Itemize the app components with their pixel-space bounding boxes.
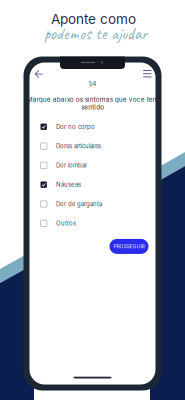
button[interactable]: Dor lombar [40, 156, 144, 175]
button[interactable]: PROSSEGUIR [109, 239, 148, 254]
staticText: Dor no corpo [56, 123, 95, 130]
button[interactable]: Back [33, 69, 44, 79]
staticText: Outros [56, 220, 76, 227]
staticText: Dor lombar [56, 162, 87, 169]
staticText: Dor de garganta [56, 200, 102, 208]
button[interactable]: Dor de garganta [40, 194, 144, 214]
button[interactable]: Menu [143, 69, 151, 79]
staticText: podemos te ajudar [44, 23, 147, 44]
staticText: Náuseas [56, 181, 81, 188]
staticText: PROSSEGUIR [113, 243, 144, 249]
button[interactable]: Outros [40, 214, 144, 233]
staticText: Aponte como [51, 11, 136, 27]
button[interactable]: Náuseas [40, 175, 144, 194]
staticText: Dores articulares [56, 142, 101, 150]
staticText: 1/4 [88, 80, 96, 87]
button[interactable]: Dores articulares [40, 136, 144, 156]
staticText: Marque abaixo os sintomas que você tem s… [26, 95, 158, 111]
button[interactable]: Dor no corpo [40, 117, 144, 136]
